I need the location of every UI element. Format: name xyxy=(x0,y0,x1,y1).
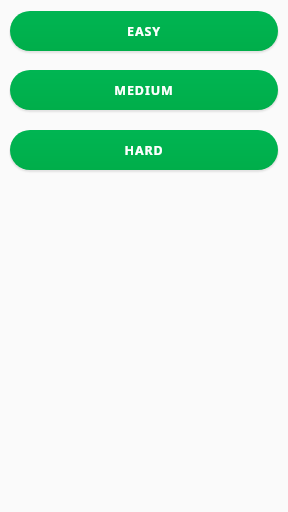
staticText: EASY xyxy=(127,23,161,40)
button[interactable]: EASY xyxy=(10,11,278,51)
button[interactable]: MEDIUM xyxy=(10,70,278,110)
staticText: MEDIUM xyxy=(114,82,174,99)
staticText: HARD xyxy=(124,142,164,159)
button[interactable]: HARD xyxy=(10,130,278,170)
